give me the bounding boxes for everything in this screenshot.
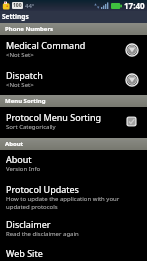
- button[interactable]: Disclaimer: [0, 215, 147, 245]
- staticText: 17:40: [124, 0, 145, 11]
- button[interactable]: Protocol Menu Sorting: [0, 107, 147, 138]
- button[interactable]: Medical Command: [0, 35, 147, 65]
- staticText: 100: [13, 2, 22, 9]
- staticText: Medical Command: [6, 39, 86, 51]
- staticText: Dispatch: [6, 69, 43, 81]
- staticText: <Not Set>: [6, 51, 34, 59]
- button[interactable]: About: [0, 150, 147, 180]
- staticText: Sort Categorically: [6, 123, 56, 131]
- staticText: Web Site: [6, 247, 43, 259]
- staticText: About: [5, 140, 24, 148]
- button[interactable]: Web Site: [0, 245, 147, 261]
- staticText: About: [6, 153, 32, 165]
- staticText: Disclaimer: [6, 218, 51, 230]
- staticText: Settings: [2, 12, 29, 21]
- button[interactable]: Choose contact: [125, 73, 139, 87]
- staticText: Phone Numbers: [5, 25, 54, 33]
- button[interactable]: Toggle protocol menu sorting: [126, 116, 139, 129]
- staticText: How to update the application with your …: [6, 195, 139, 211]
- button[interactable]: Dispatch: [0, 65, 147, 95]
- staticText: Protocol Updates: [6, 183, 79, 195]
- button[interactable]: Choose contact: [125, 43, 139, 57]
- staticText: Version Info: [6, 165, 41, 173]
- staticText: 44°: [25, 2, 35, 10]
- staticText: Read the disclaimer again: [6, 230, 79, 238]
- staticText: Menu Sorting: [5, 97, 46, 105]
- button[interactable]: Protocol Updates: [0, 180, 147, 215]
- staticText: <Not Set>: [6, 81, 34, 89]
- staticText: Protocol Menu Sorting: [6, 111, 102, 123]
